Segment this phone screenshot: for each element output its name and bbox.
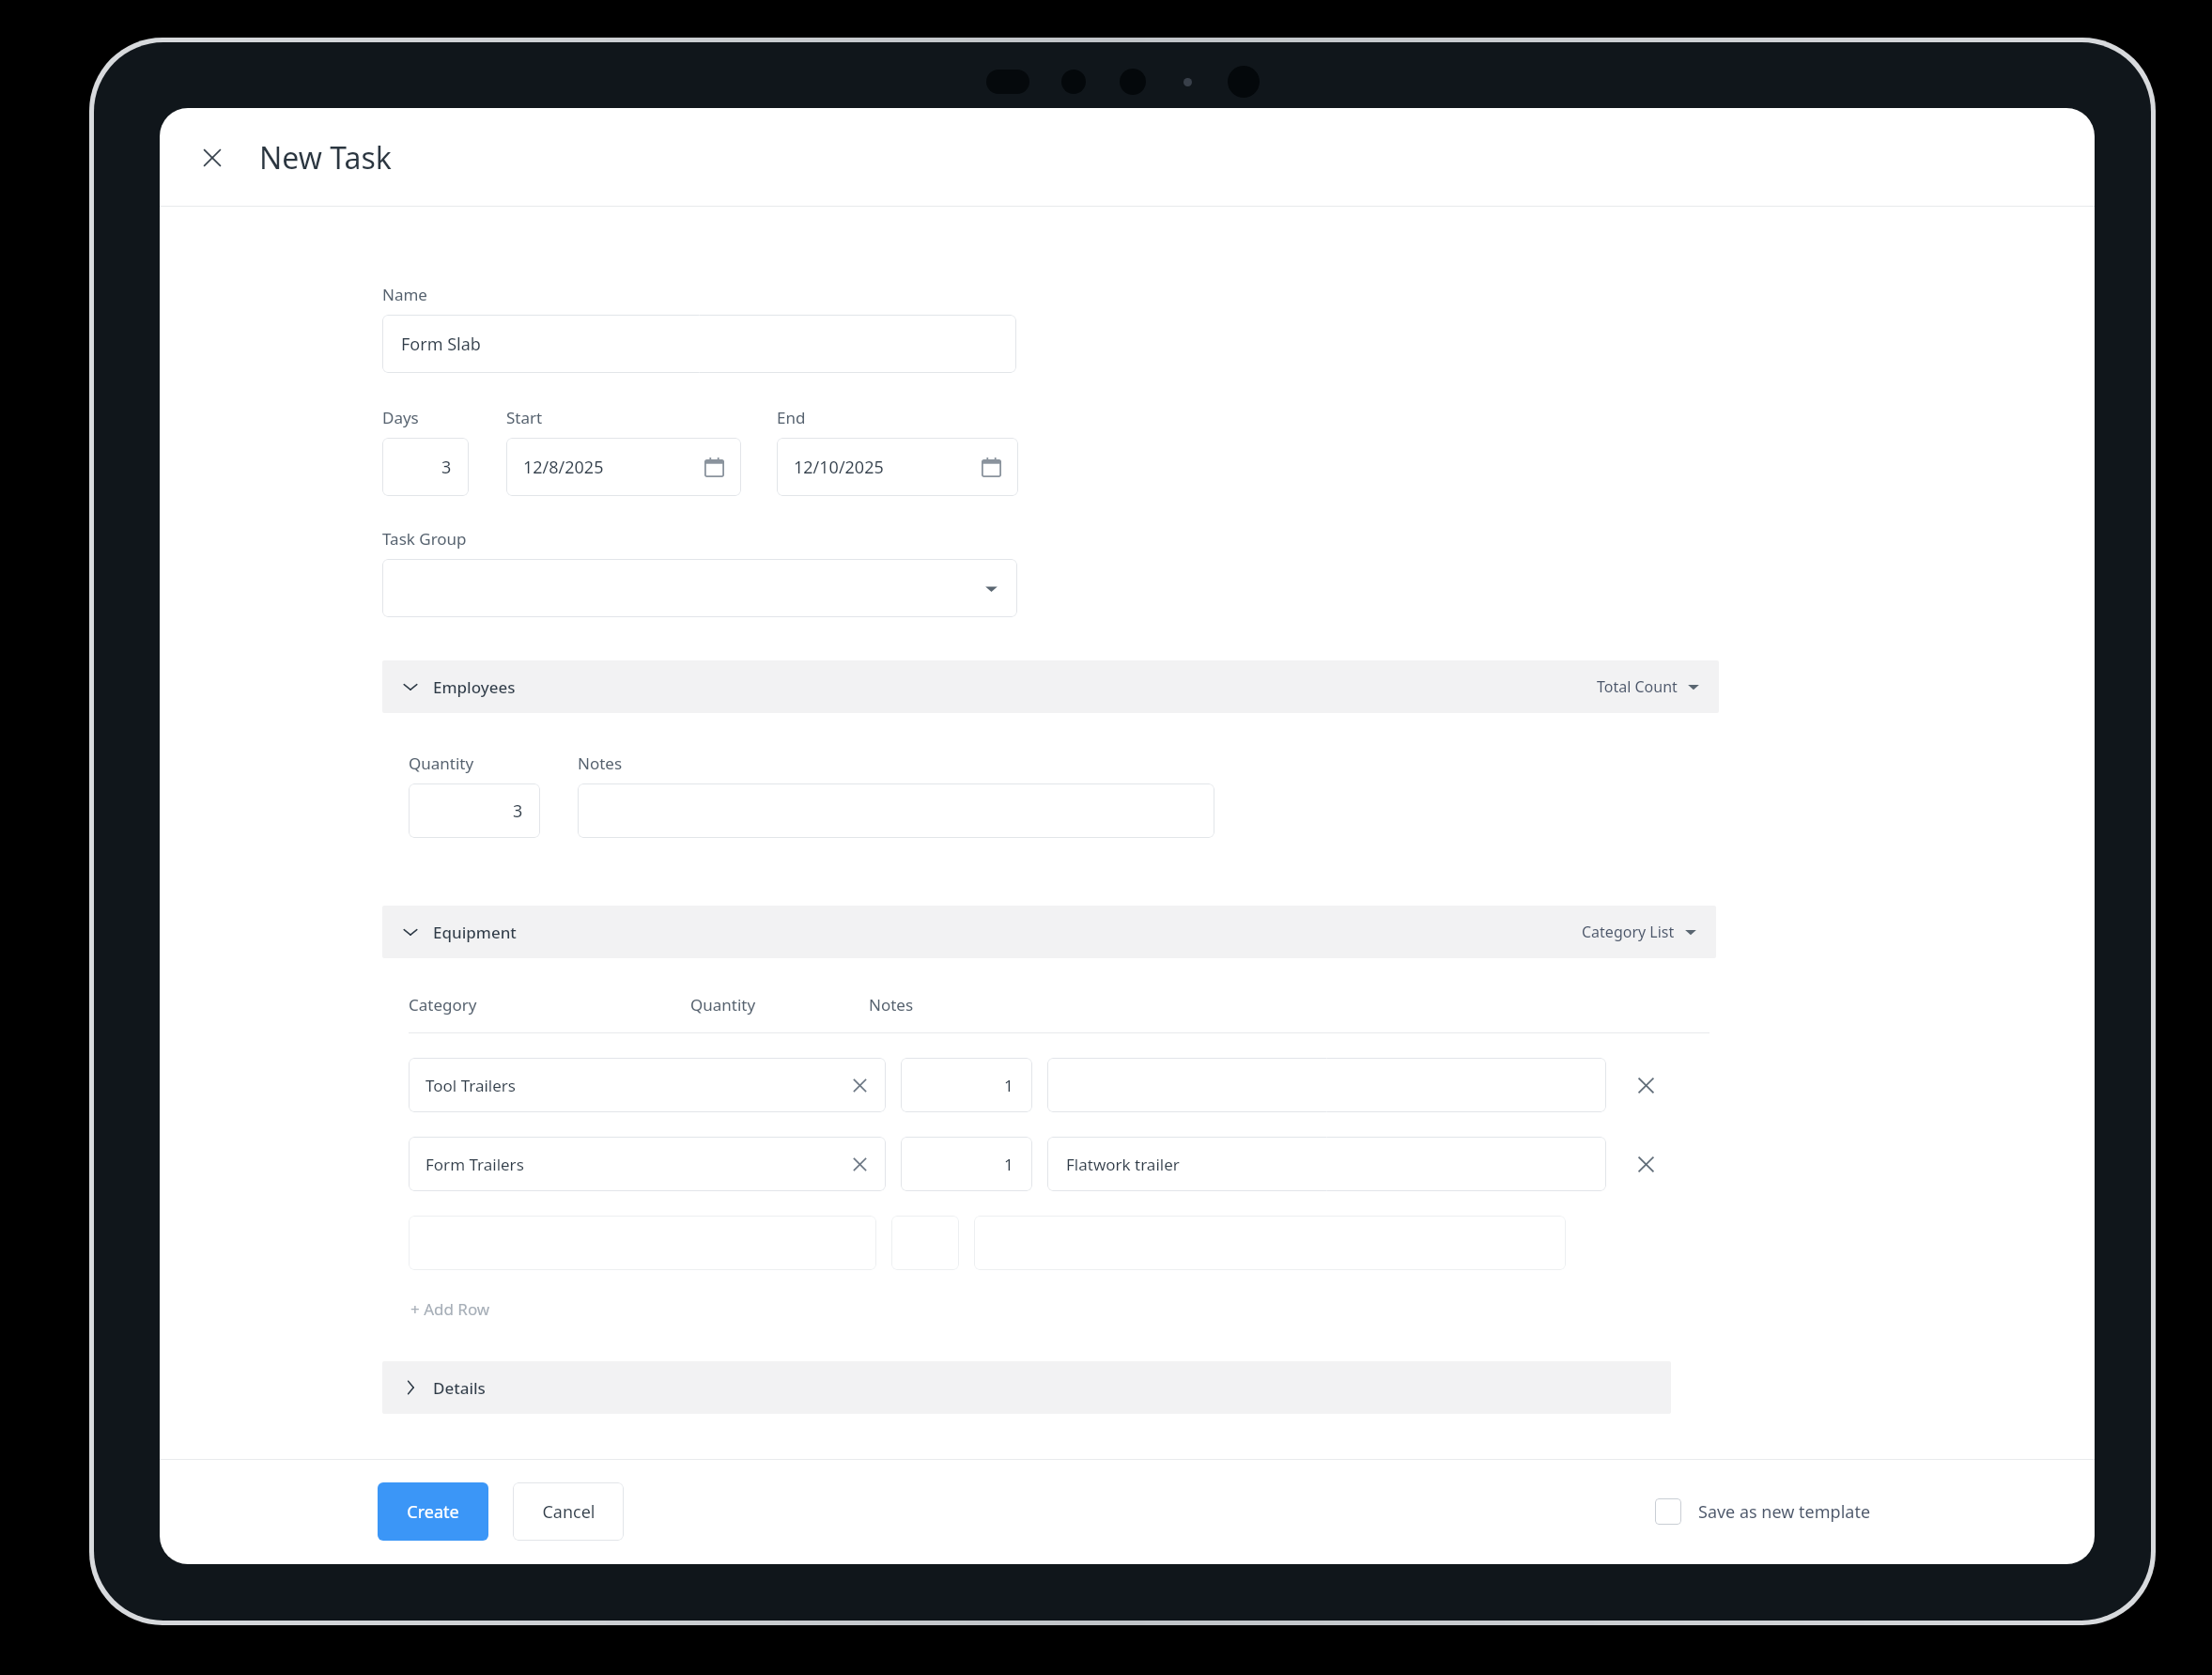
staticText: Create <box>407 1500 459 1524</box>
button[interactable]: Save as new template <box>1649 1493 1877 1530</box>
button[interactable] <box>1047 1058 1606 1112</box>
staticText: Form Trailers <box>425 1154 524 1175</box>
staticText: Category List <box>1582 922 1675 942</box>
staticText: Cancel <box>542 1500 596 1524</box>
staticText: Equipment <box>433 922 517 943</box>
staticText: 1 <box>1004 1154 1013 1175</box>
button[interactable]: Flatwork trailer <box>1047 1137 1606 1191</box>
staticText: Days <box>382 407 419 428</box>
button[interactable]: 3 <box>382 438 469 496</box>
button[interactable]: Total Count <box>1597 676 1700 697</box>
staticText: Form Slab <box>401 333 481 356</box>
staticText: Flatwork trailer <box>1066 1154 1180 1175</box>
button[interactable] <box>382 559 1017 617</box>
staticText: New Task <box>259 137 392 178</box>
button[interactable]: Form Slab <box>382 315 1016 373</box>
button[interactable] <box>578 783 1214 838</box>
staticText: Notes <box>869 994 914 1016</box>
staticText: 12/8/2025 <box>523 456 604 479</box>
button[interactable]: Form Trailers <box>409 1137 886 1191</box>
staticText: Tool Trailers <box>425 1075 516 1096</box>
staticText: 3 <box>513 799 523 823</box>
button[interactable]: Tool Trailers <box>409 1058 886 1112</box>
staticText: Details <box>433 1377 486 1399</box>
button[interactable]: Category List <box>1582 922 1697 942</box>
button[interactable]: Close <box>186 132 239 184</box>
button[interactable]: Clear category <box>851 1077 869 1094</box>
button[interactable]: Remove row <box>1627 1066 1664 1104</box>
staticText: Category <box>409 994 477 1016</box>
button[interactable]: Pick end date <box>982 458 1001 477</box>
button[interactable]: Cancel <box>513 1482 624 1541</box>
button[interactable]: 12/10/2025 <box>777 438 1018 496</box>
button[interactable]: Clear category <box>851 1155 869 1173</box>
staticText: + Add Row <box>410 1298 490 1320</box>
staticText: Employees <box>433 676 516 698</box>
staticText: 3 <box>441 456 452 479</box>
button[interactable]: Details <box>382 1361 1671 1414</box>
button[interactable]: Pick start date <box>704 458 724 477</box>
staticText: 12/10/2025 <box>794 456 884 479</box>
button[interactable]: Remove row <box>1627 1145 1664 1183</box>
staticText: End <box>777 407 806 428</box>
button[interactable]: 3 <box>409 783 540 838</box>
staticText: 1 <box>1004 1075 1013 1096</box>
button[interactable]: 12/8/2025 <box>506 438 741 496</box>
button[interactable]: Create <box>378 1482 488 1541</box>
staticText: Start <box>506 407 543 428</box>
staticText: Notes <box>578 752 623 774</box>
button[interactable]: Employees <box>382 660 1719 713</box>
staticText: Save as new template <box>1698 1500 1871 1524</box>
staticText: Quantity <box>409 752 474 774</box>
button[interactable]: Equipment <box>382 906 1716 958</box>
button[interactable]: 1 <box>901 1058 1032 1112</box>
staticText: Task Group <box>382 528 467 550</box>
staticText: Name <box>382 284 427 305</box>
staticText: Total Count <box>1597 676 1678 697</box>
button[interactable]: + Add Row <box>409 1295 492 1324</box>
staticText: Quantity <box>690 994 756 1016</box>
button[interactable]: 1 <box>901 1137 1032 1191</box>
